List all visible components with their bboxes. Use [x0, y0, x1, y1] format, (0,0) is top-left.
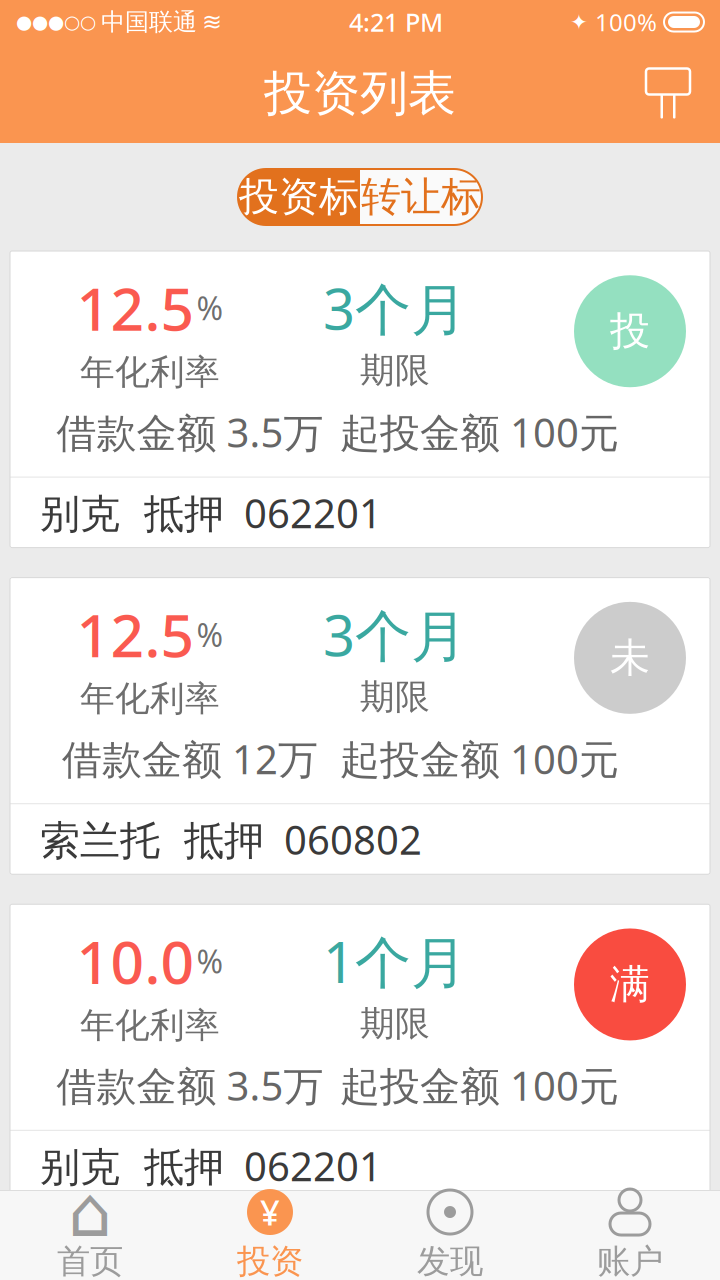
staticText: 4:21 PM: [349, 5, 443, 39]
staticText: 3个月: [323, 597, 467, 672]
staticText: 未: [610, 633, 650, 682]
staticText: 12.5: [76, 596, 194, 673]
staticText: 12.5: [76, 1249, 194, 1280]
staticText: ¥: [260, 1189, 280, 1235]
staticText: 100%: [595, 6, 657, 38]
staticText: 首页: [57, 1241, 123, 1280]
button[interactable]: 账户: [540, 1190, 720, 1280]
staticText: 起投金额 100元: [340, 405, 619, 459]
staticText: 年化利率: [80, 351, 220, 393]
staticText: %: [196, 287, 223, 329]
staticText: 转让标: [361, 172, 481, 221]
staticText: 期限: [360, 676, 430, 718]
staticText: 别克 抵押 062201: [40, 1139, 382, 1192]
staticText: 满: [610, 960, 650, 1009]
button[interactable]: 发现: [360, 1190, 540, 1280]
staticText: 3个月: [323, 271, 467, 345]
staticText: 1个月: [323, 924, 467, 998]
staticText: 起投金额 100元: [340, 732, 619, 785]
button[interactable]: ¥: [180, 1190, 360, 1280]
staticText: 中国联通: [101, 7, 197, 37]
staticText: ⌂: [68, 1173, 112, 1251]
staticText: ≋: [202, 8, 222, 36]
button[interactable]: 12.5: [10, 578, 710, 874]
staticText: 投资列表: [264, 64, 456, 123]
staticText: 期限: [360, 1002, 430, 1045]
staticText: 年化利率: [80, 1004, 220, 1047]
staticText: ●●●○○: [16, 11, 96, 33]
staticText: 索兰托 抵押 060802: [40, 813, 422, 866]
staticText: %: [196, 940, 223, 982]
staticText: 起投金额 100元: [340, 1059, 619, 1112]
staticText: 期限: [360, 349, 430, 392]
button[interactable]: 12.5: [10, 1231, 710, 1280]
staticText: 发现: [417, 1241, 483, 1280]
staticText: 3个月: [323, 1251, 467, 1280]
staticText: 投: [610, 307, 650, 356]
staticText: 12.5: [76, 269, 194, 347]
staticText: 借款金额 3.5万: [56, 1059, 323, 1112]
staticText: 借款金额 3.5万: [56, 405, 323, 459]
staticText: ✦: [570, 10, 588, 34]
staticText: 投资: [237, 1241, 303, 1280]
button[interactable]: 转让标: [360, 169, 482, 225]
staticText: 10.0: [76, 922, 194, 1000]
button[interactable]: 投资标: [238, 169, 360, 225]
button[interactable]: ⌂: [0, 1190, 180, 1280]
button[interactable]: 12.5: [10, 251, 710, 548]
button[interactable]: 10.0: [10, 904, 710, 1201]
staticText: 年化利率: [80, 677, 220, 720]
staticText: 借款金额 12万: [62, 732, 318, 785]
staticText: 别克 抵押 062201: [40, 486, 382, 539]
button[interactable]: 筛选: [628, 53, 708, 133]
staticText: 账户: [597, 1241, 663, 1280]
staticText: %: [196, 613, 223, 656]
staticText: 投资标: [239, 172, 359, 221]
